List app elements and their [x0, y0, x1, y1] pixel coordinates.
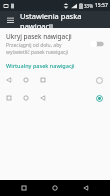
button[interactable]: Układ — [0, 71, 110, 89]
staticText: Ustawienia paska nawigacji — [20, 11, 110, 28]
button[interactable]: Ekran główny — [48, 181, 62, 195]
button[interactable]: Menu — [4, 14, 16, 26]
staticText: 33% — [84, 3, 93, 9]
staticText: 15:57 — [95, 2, 108, 9]
button[interactable]: Ukryj pasek nawigacji — [89, 38, 105, 50]
button[interactable]: Wybrany układ — [0, 89, 110, 107]
staticText: Przeciągnij od dołu, aby wyświetlić pase… — [6, 42, 85, 55]
button[interactable]: Układ — [93, 74, 105, 86]
button[interactable]: Ostatnie — [17, 181, 31, 195]
staticText: Wirtualny pasek nawigacji — [6, 62, 75, 69]
staticText: Ukryj pasek nawigacji — [6, 32, 72, 41]
button[interactable]: Wstecz — [79, 181, 93, 195]
button[interactable]: Ukryj pasek nawigacji — [0, 28, 110, 59]
button[interactable]: Wybrany układ — [93, 92, 105, 104]
